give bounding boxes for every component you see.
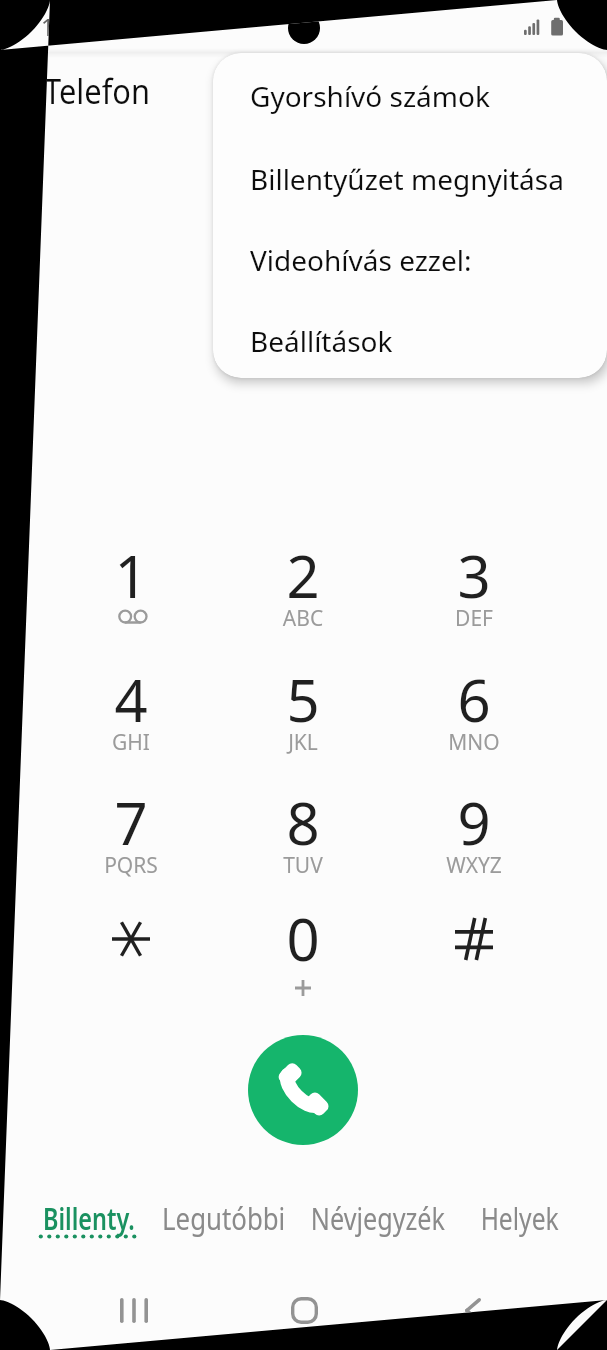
staticText: 6	[434, 660, 514, 739]
button[interactable]: 8	[218, 781, 388, 901]
staticText: DEF	[424, 604, 524, 633]
staticText: Gyorshívó számok	[250, 77, 490, 115]
staticText: Videohívás ezzel:	[250, 241, 472, 279]
staticText: 4	[91, 660, 171, 739]
staticText: Billentyűzet megnyitása	[250, 160, 564, 198]
button[interactable]: 6	[389, 658, 559, 778]
staticText: 9	[434, 783, 514, 862]
staticText: 0	[263, 899, 343, 978]
staticText: 8	[263, 783, 343, 862]
button[interactable]: Gyorshívó számok	[213, 55, 607, 137]
staticText: Névjegyzék	[311, 1198, 445, 1239]
button[interactable]: 5	[218, 658, 388, 778]
button[interactable]: Videohívás ezzel:	[213, 219, 607, 301]
button[interactable]: Back	[423, 1270, 523, 1350]
button[interactable]: Recents	[84, 1270, 184, 1350]
staticText: 10:00	[41, 11, 100, 42]
staticText: 5	[263, 660, 343, 739]
staticText: JKL	[253, 728, 353, 757]
button[interactable]: 0	[218, 897, 388, 1017]
button[interactable]: 2	[218, 534, 388, 654]
staticText: 3	[434, 536, 514, 615]
staticText: WXYZ	[424, 851, 524, 880]
staticText: Legutóbbi	[162, 1198, 286, 1239]
button[interactable]: 3	[389, 534, 559, 654]
staticText: PQRS	[81, 851, 181, 880]
staticText: 1	[91, 536, 171, 615]
button[interactable]: Billenty.	[9, 1198, 169, 1264]
button[interactable]: 4	[46, 658, 216, 778]
staticText: GHI	[81, 728, 181, 757]
staticText: MNO	[424, 728, 524, 757]
button[interactable]: Billentyűzet megnyitása	[213, 138, 607, 220]
button[interactable]: 7	[46, 781, 216, 901]
button[interactable]: Pound	[389, 897, 559, 1017]
staticText: Billenty.	[43, 1198, 135, 1239]
button[interactable]: Telefon	[44, 67, 165, 115]
staticText: ABC	[253, 604, 353, 633]
button[interactable]: 9	[389, 781, 559, 901]
button[interactable]: 1	[46, 534, 216, 654]
staticText: Beállítások	[250, 322, 393, 360]
button[interactable]: Home	[254, 1270, 354, 1350]
button[interactable]: Beállítások	[213, 300, 607, 378]
button[interactable]: Call	[248, 1035, 358, 1145]
staticText: Telefon	[44, 67, 150, 115]
staticText: TUV	[253, 851, 353, 880]
staticText: Helyek	[481, 1198, 559, 1239]
staticText: 7	[91, 783, 171, 862]
button[interactable]: Névjegyzék	[298, 1198, 458, 1264]
button[interactable]: Star	[46, 897, 216, 1017]
button[interactable]: Legutóbbi	[144, 1198, 304, 1264]
button[interactable]: Helyek	[440, 1198, 600, 1264]
staticText: 2	[263, 536, 343, 615]
